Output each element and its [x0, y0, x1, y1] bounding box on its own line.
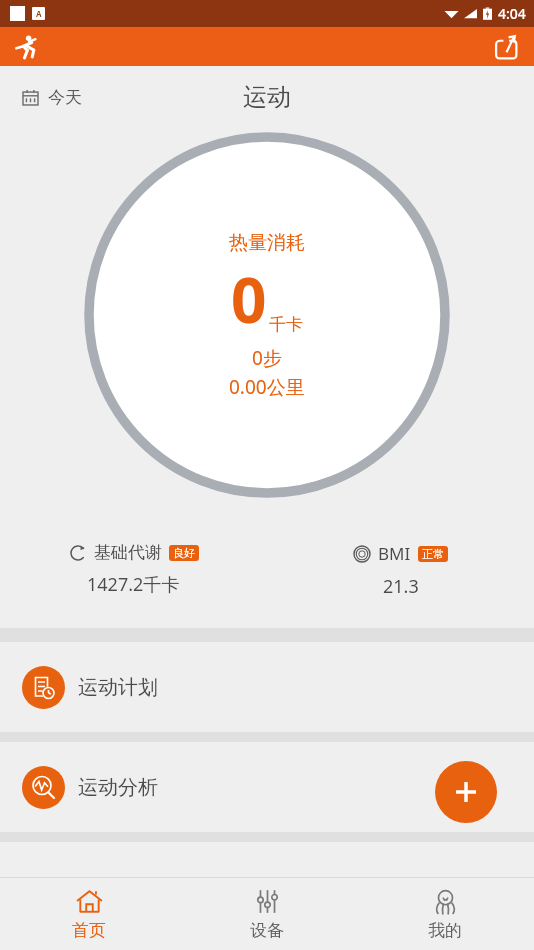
staticText: 0步	[252, 345, 282, 371]
staticText: 我的	[428, 920, 462, 941]
button[interactable]: 基础代谢	[0, 528, 267, 597]
staticText: 首页	[72, 920, 106, 941]
staticText: 4:04	[498, 4, 526, 23]
staticText: 良好	[173, 546, 195, 560]
button[interactable]: BMI	[267, 528, 534, 599]
staticText: 千卡	[269, 314, 303, 335]
button[interactable]: 运动计划	[0, 642, 534, 732]
staticText: 0.00公里	[229, 374, 305, 400]
staticText: 运动计划	[78, 675, 158, 700]
button[interactable]: 我的	[356, 888, 534, 941]
staticText: 0	[231, 257, 267, 341]
button[interactable]: Add	[435, 761, 497, 823]
button[interactable]: Share	[488, 29, 524, 65]
staticText: 1427.2千卡	[87, 572, 180, 597]
button[interactable]: Exercise	[8, 29, 44, 65]
button[interactable]: 设备	[178, 888, 356, 941]
staticText: BMI	[378, 542, 411, 565]
staticText: 热量消耗	[229, 231, 305, 255]
staticText: 设备	[250, 920, 284, 941]
staticText: 运动	[243, 82, 291, 112]
button[interactable]: 首页	[0, 888, 178, 941]
staticText: 今天	[48, 87, 82, 108]
staticText: 21.3	[383, 574, 419, 599]
staticText: A	[36, 8, 42, 19]
staticText: 正常	[422, 547, 444, 561]
staticText: 基础代谢	[94, 542, 162, 563]
staticText: 运动分析	[78, 775, 158, 800]
button[interactable]: 今天	[22, 87, 82, 108]
button[interactable]: 运动分析	[0, 742, 534, 832]
